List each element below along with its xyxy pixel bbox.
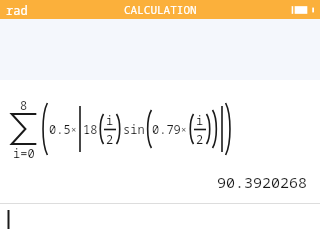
staticText: 2 (106, 131, 114, 147)
staticText: i=0 (13, 145, 35, 161)
staticText: 8 (20, 97, 28, 113)
staticText: i (106, 112, 114, 128)
staticText: CALCULATION (124, 2, 197, 17)
staticText: × (71, 123, 77, 135)
button[interactable] (0, 204, 320, 240)
staticText: sin (123, 121, 145, 137)
staticText: × (181, 123, 187, 135)
staticText: 0.79 (152, 121, 181, 137)
button[interactable]: rad (6, 2, 28, 18)
button[interactable]: Battery (292, 4, 314, 16)
staticText: i (196, 112, 204, 128)
staticText: 0.5 (49, 121, 71, 137)
staticText: 90.3920268 (217, 172, 308, 192)
staticText: 2 (196, 131, 204, 147)
button[interactable]: 8 (0, 80, 320, 203)
staticText: 18 (83, 121, 98, 137)
